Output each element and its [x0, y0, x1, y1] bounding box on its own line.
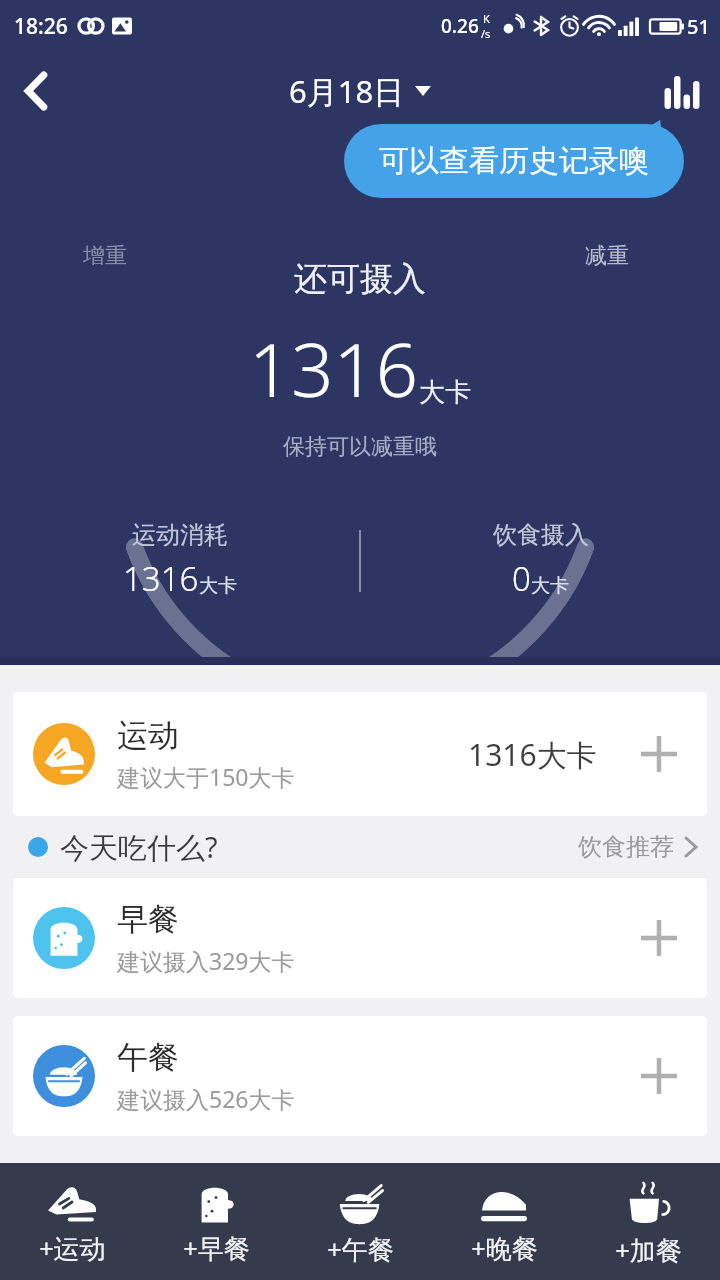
staticText: 还可摄入: [294, 258, 426, 300]
staticText: 减重: [585, 242, 629, 270]
button[interactable]: 6月18日: [289, 70, 431, 112]
staticText: +运动: [39, 1230, 106, 1266]
staticText: 午餐: [117, 1038, 179, 1077]
staticText: 保持可以减重哦: [283, 433, 437, 461]
staticText: K: [483, 11, 490, 26]
staticText: +加餐: [615, 1232, 682, 1268]
staticText: +晚餐: [471, 1230, 538, 1266]
staticText: 1316: [123, 556, 199, 601]
staticText: 增重: [83, 242, 127, 270]
button[interactable]: 运动: [13, 692, 707, 816]
staticText: 饮食摄入: [493, 520, 589, 550]
staticText: 饮食推荐: [578, 832, 674, 862]
staticText: 今天吃什么?: [60, 827, 218, 867]
button[interactable]: +加餐: [576, 1163, 720, 1280]
button[interactable]: 今天吃什么?: [0, 816, 720, 878]
button[interactable]: Add 运动: [631, 726, 687, 782]
staticText: 1316大卡: [468, 734, 597, 775]
button[interactable]: +午餐: [288, 1163, 432, 1280]
button[interactable]: Add 早餐: [631, 910, 687, 966]
button[interactable]: +运动: [0, 1163, 144, 1280]
button[interactable]: 早餐: [13, 878, 707, 998]
staticText: +午餐: [327, 1231, 394, 1267]
staticText: 建议大于150大卡: [117, 761, 295, 792]
button[interactable]: Back: [0, 55, 72, 127]
staticText: +早餐: [183, 1230, 250, 1266]
staticText: 可以查看历史记录噢: [379, 142, 649, 180]
button[interactable]: 午餐: [13, 1016, 707, 1136]
staticText: 运动消耗: [132, 520, 228, 550]
staticText: 建议摄入526大卡: [117, 1083, 295, 1114]
button[interactable]: Add 午餐: [631, 1048, 687, 1104]
staticText: 早餐: [117, 900, 179, 939]
button[interactable]: Statistics: [644, 53, 720, 129]
staticText: 1316: [249, 318, 419, 419]
staticText: 0.26: [441, 13, 479, 39]
button[interactable]: +晚餐: [432, 1163, 576, 1280]
staticText: 大卡: [419, 376, 471, 409]
staticText: 大卡: [531, 574, 569, 598]
staticText: 51: [687, 13, 710, 40]
button[interactable]: +早餐: [144, 1163, 288, 1280]
staticText: /s: [481, 26, 491, 41]
staticText: 18:26: [14, 12, 68, 41]
staticText: 建议摄入329大卡: [117, 945, 295, 976]
staticText: 6月18日: [289, 70, 405, 112]
staticText: 0: [512, 556, 531, 601]
staticText: 运动: [117, 716, 179, 755]
button[interactable]: 可以查看历史记录噢: [344, 124, 684, 198]
staticText: 大卡: [199, 574, 237, 598]
